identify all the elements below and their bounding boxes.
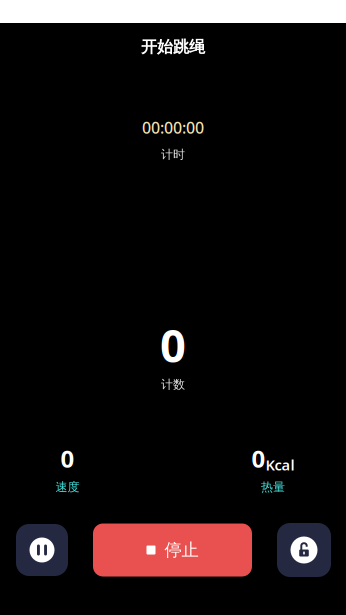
staticText: 热量 <box>261 480 285 494</box>
staticText: 0 <box>160 315 186 375</box>
staticText: 计数 <box>161 377 185 392</box>
staticText: 计时 <box>161 147 185 162</box>
staticText: 速度 <box>55 480 79 494</box>
staticText: Kcal <box>265 455 294 474</box>
button[interactable]: Lock <box>277 523 331 577</box>
staticText: 0 <box>60 443 74 474</box>
button[interactable]: Pause <box>16 524 68 576</box>
staticText: 00:00:00 <box>142 117 204 138</box>
button[interactable]: 停止 <box>93 523 252 576</box>
staticText: 0 <box>251 443 265 474</box>
staticText: 停止 <box>164 539 198 561</box>
staticText: 开始跳绳 <box>141 37 205 57</box>
